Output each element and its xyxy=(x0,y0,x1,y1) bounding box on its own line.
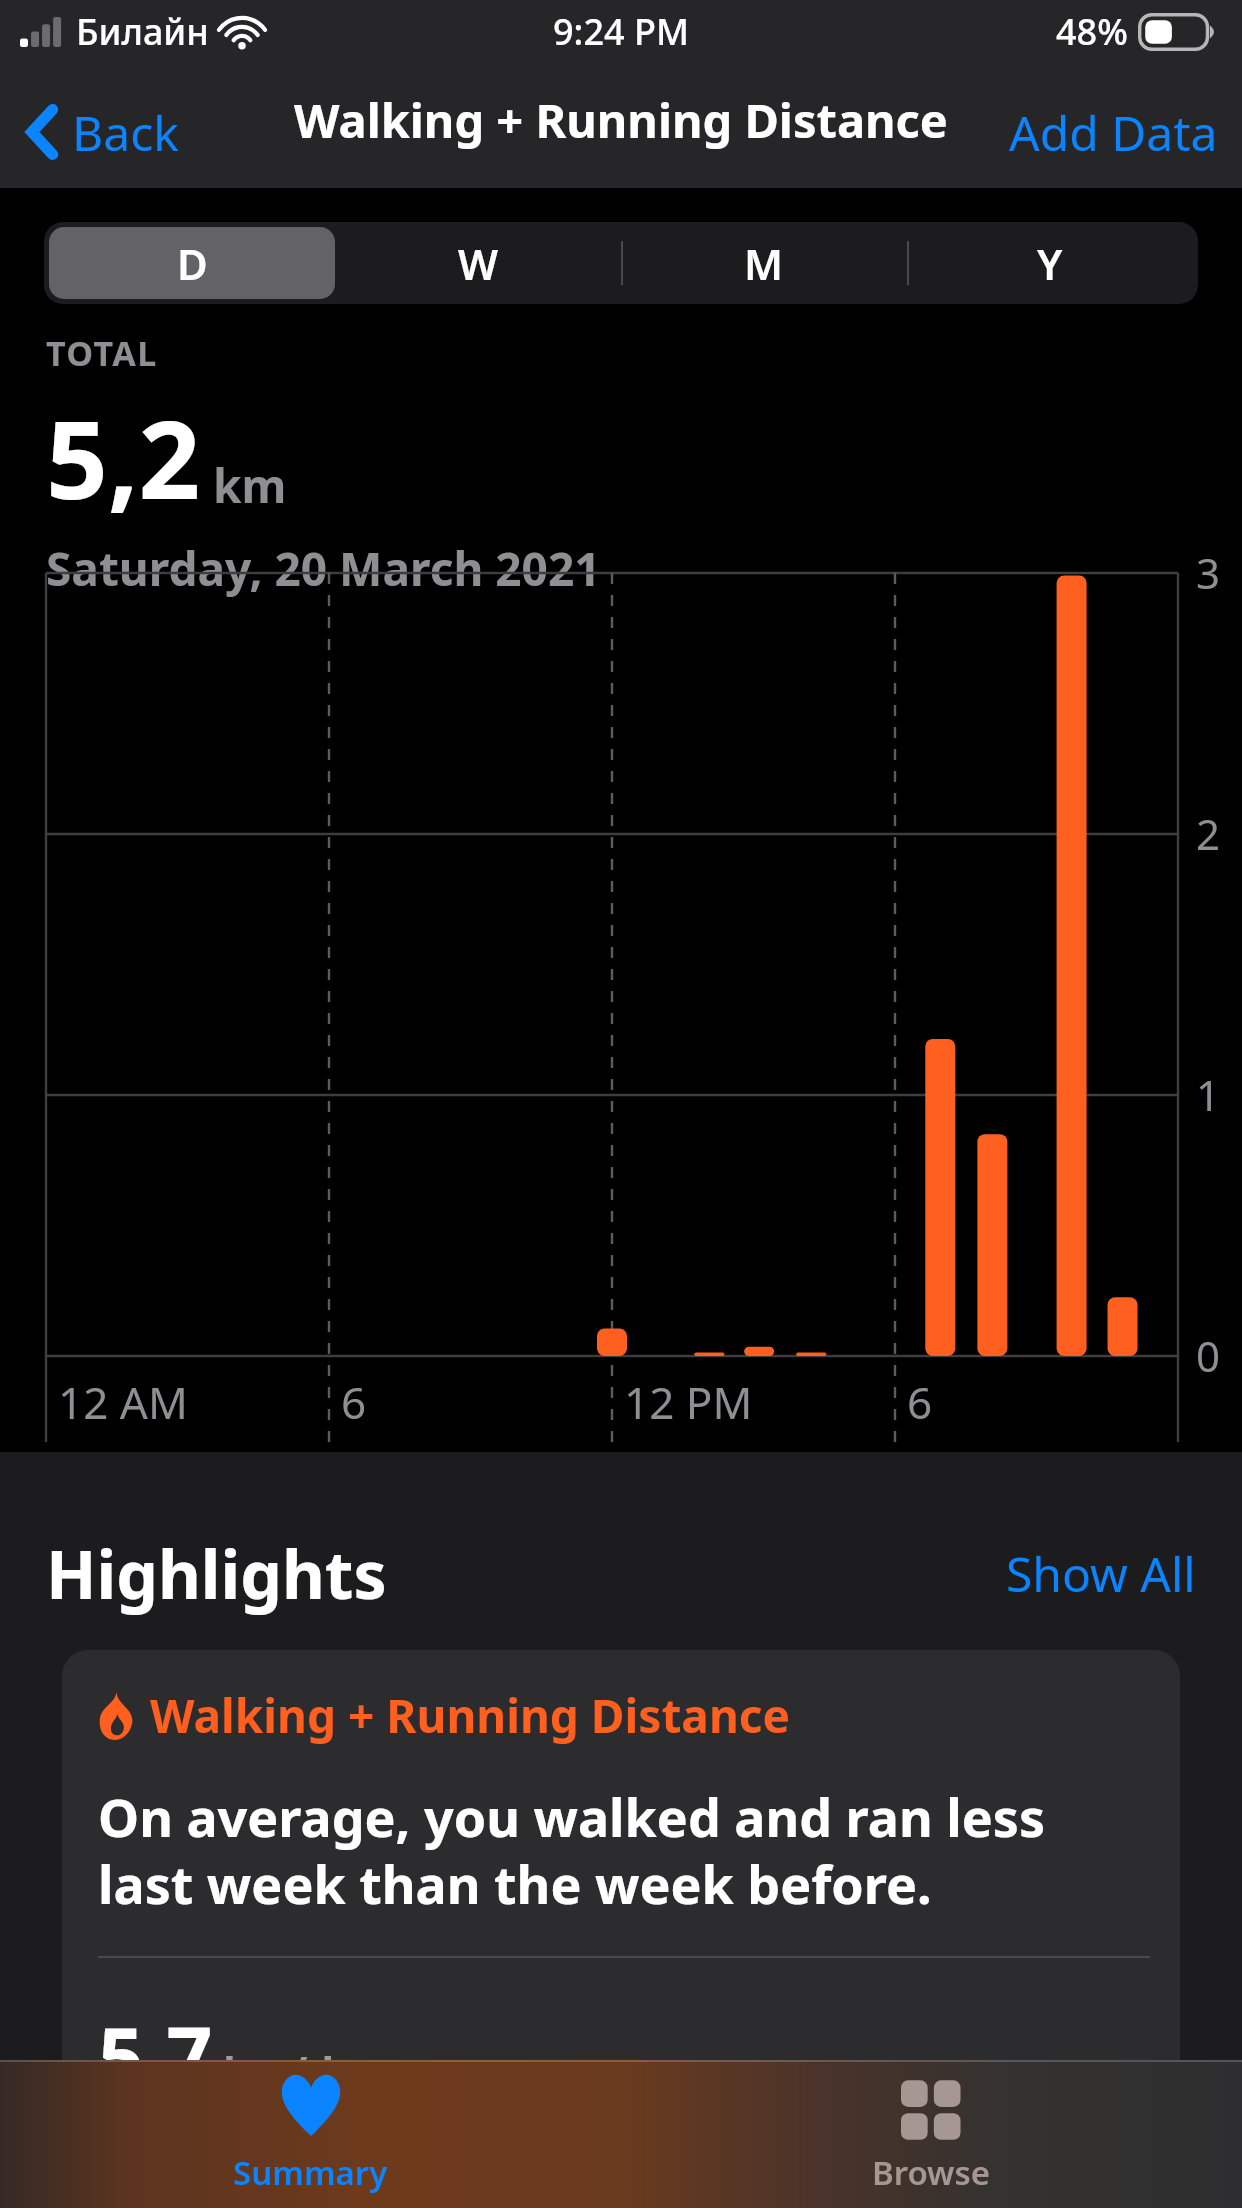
button[interactable]: Add Data xyxy=(993,76,1242,188)
staticText: 5,2 xyxy=(46,384,201,531)
staticText: 12 PM xyxy=(624,1372,753,1432)
staticText: 9:24 PM xyxy=(553,7,689,56)
staticText: 1 xyxy=(1196,1066,1221,1123)
staticText: 0 xyxy=(1196,1327,1221,1384)
staticText: 6 xyxy=(341,1372,367,1432)
other: Summary xyxy=(278,2074,344,2136)
staticText: D xyxy=(177,235,208,292)
staticText: Add Data xyxy=(1009,100,1218,165)
staticText: Back xyxy=(72,100,179,165)
button[interactable]: M xyxy=(621,227,907,299)
staticText: Show All xyxy=(1006,1541,1196,1606)
staticText: km/day xyxy=(223,2042,384,2099)
button[interactable]: Summary xyxy=(0,2060,621,2208)
staticText: Highlights xyxy=(46,1528,387,1618)
staticText: 6 xyxy=(907,1372,933,1432)
staticText: Browse xyxy=(872,2150,991,2195)
staticText: On average, you walked and ran less last… xyxy=(98,1781,1150,1920)
button[interactable]: Show All xyxy=(994,1529,1208,1618)
button[interactable]: Browse xyxy=(621,2060,1242,2208)
staticText: 2 xyxy=(1196,805,1221,862)
button[interactable]: Walking + Running Distance xyxy=(62,1650,1180,2208)
button[interactable]: Back xyxy=(0,76,195,188)
staticText: M xyxy=(744,235,784,292)
staticText: 12 AM xyxy=(58,1372,188,1432)
staticText: Walking + Running Distance xyxy=(294,88,948,152)
staticText: Билайн xyxy=(76,7,209,56)
other: Browse xyxy=(901,2078,963,2136)
staticText: Saturday, 20 March 2021 xyxy=(46,537,601,600)
button[interactable]: Y xyxy=(907,227,1193,299)
staticText: Summary xyxy=(233,2150,388,2195)
button[interactable]: W xyxy=(335,227,621,299)
staticText: TOTAL xyxy=(46,330,158,376)
staticText: W xyxy=(458,235,499,292)
staticText: Walking + Running Distance xyxy=(150,1684,790,1747)
staticText: Y xyxy=(1037,235,1063,292)
button[interactable]: D xyxy=(49,227,335,299)
staticText: km xyxy=(213,454,287,517)
staticText: 3 xyxy=(1196,544,1221,601)
staticText: 5,7 xyxy=(98,2000,213,2109)
staticText: 48% xyxy=(1056,7,1128,56)
